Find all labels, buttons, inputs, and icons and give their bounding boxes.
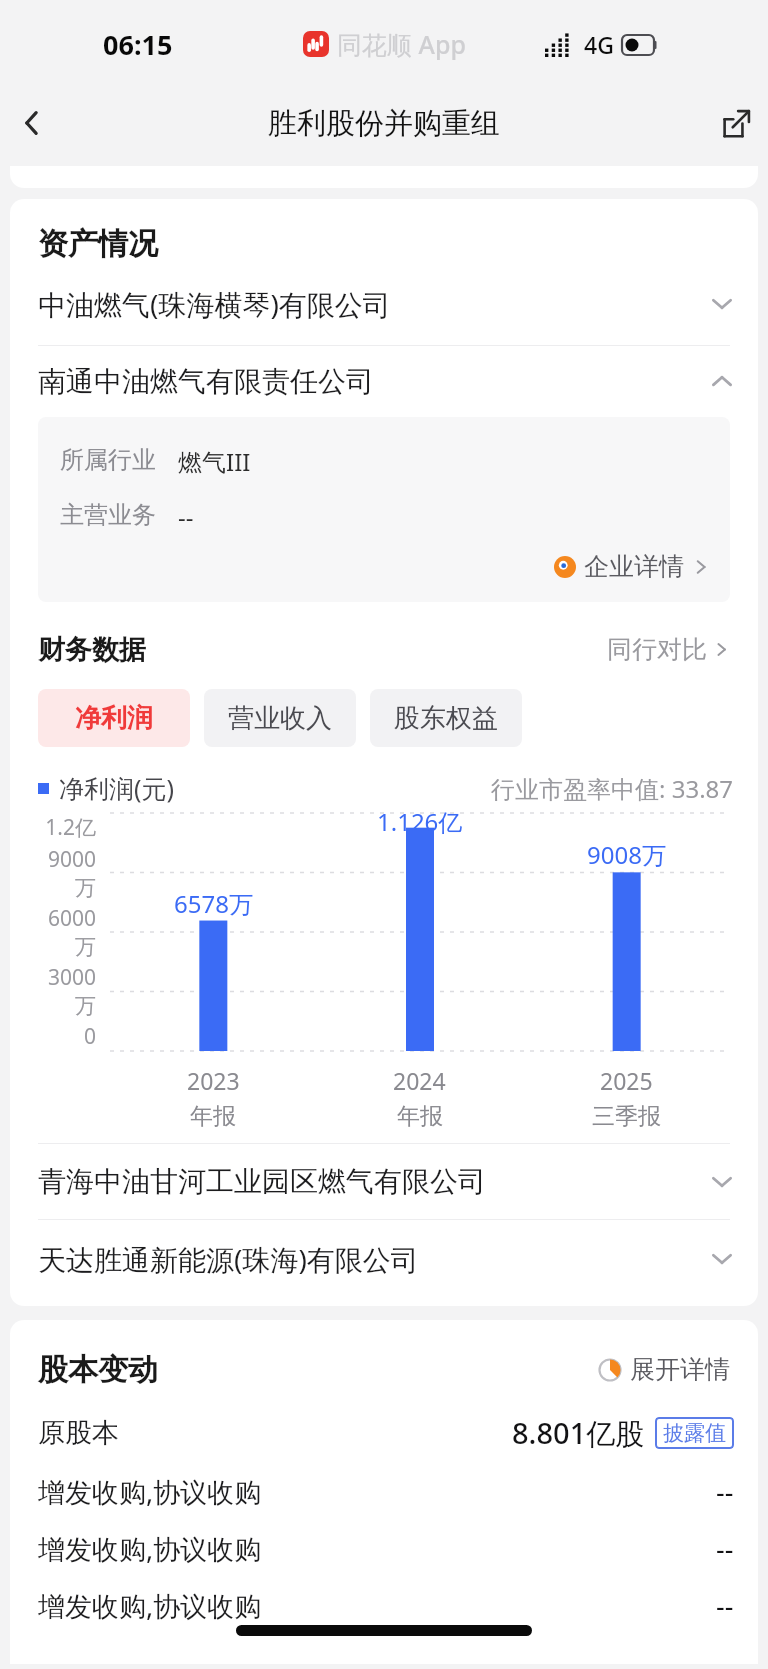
staticText: 中油燃气(珠海横琴)有限公司: [38, 285, 391, 323]
staticText: 年报: [190, 1102, 236, 1131]
staticText: --: [716, 1530, 734, 1567]
staticText: 企业详情: [584, 551, 684, 582]
button[interactable]: 增发收购,协议收购: [10, 1453, 758, 1510]
staticText: 胜利股份并购重组: [268, 105, 500, 142]
staticText: 1.126亿: [377, 805, 463, 838]
staticText: 1.2亿: [45, 813, 96, 842]
staticText: --: [716, 1473, 734, 1510]
staticText: 0: [83, 1022, 96, 1051]
staticText: 06:15: [103, 26, 173, 63]
button[interactable]: 原股本: [10, 1389, 758, 1453]
staticText: 净利润(元): [59, 771, 175, 805]
staticText: 股本变动: [38, 1351, 158, 1389]
staticText: 三季报: [592, 1102, 661, 1131]
button[interactable]: 净利润: [38, 689, 190, 747]
staticText: 披露值: [663, 1420, 726, 1446]
staticText: 股东权益: [394, 702, 498, 735]
staticText: 9008万: [587, 838, 666, 871]
button[interactable]: 青海中油甘河工业园区燃气有限公司: [10, 1144, 758, 1219]
staticText: 青海中油甘河工业园区燃气有限公司: [38, 1164, 486, 1199]
staticText: 3000万: [34, 963, 96, 1019]
staticText: 南通中油燃气有限责任公司: [38, 364, 374, 399]
button[interactable]: Back: [0, 91, 64, 155]
button[interactable]: 同行对比: [603, 630, 734, 669]
staticText: 营业收入: [228, 702, 332, 735]
staticText: 2024: [393, 1065, 446, 1096]
staticText: 主营业务: [60, 500, 156, 530]
staticText: --: [716, 1587, 734, 1624]
staticText: 2025: [600, 1065, 653, 1096]
button[interactable]: 中油燃气(珠海横琴)有限公司: [10, 263, 758, 345]
staticText: 净利润: [75, 702, 153, 735]
staticText: --: [178, 500, 194, 533]
staticText: 财务数据: [38, 633, 146, 667]
staticText: 所属行业: [60, 445, 156, 475]
staticText: 8.801亿股: [512, 1413, 645, 1453]
button[interactable]: 股东权益: [370, 689, 522, 747]
staticText: 6000万: [34, 904, 96, 960]
staticText: 9000万: [34, 845, 96, 901]
button[interactable]: 展开详情: [594, 1350, 734, 1389]
button[interactable]: 增发收购,协议收购: [10, 1510, 758, 1567]
staticText: 增发收购,协议收购: [38, 1473, 262, 1510]
button[interactable]: 增发收购,协议收购: [10, 1567, 758, 1624]
button[interactable]: 企业详情: [548, 547, 716, 586]
staticText: 原股本: [38, 1416, 119, 1450]
staticText: 年报: [397, 1102, 443, 1131]
staticText: 6578万: [174, 887, 253, 920]
staticText: 资产情况: [38, 225, 158, 263]
staticText: 同行对比: [607, 634, 707, 665]
button[interactable]: 南通中油燃气有限责任公司: [10, 346, 758, 417]
staticText: 增发收购,协议收购: [38, 1587, 262, 1624]
staticText: 展开详情: [630, 1354, 730, 1385]
button[interactable]: 营业收入: [204, 689, 356, 747]
staticText: 行业市盈率中值: 33.87: [491, 772, 734, 805]
staticText: 2023: [187, 1065, 240, 1096]
staticText: 增发收购,协议收购: [38, 1530, 262, 1567]
button[interactable]: Share: [704, 91, 768, 155]
staticText: 燃气III: [178, 445, 251, 478]
staticText: 同花顺 App: [337, 27, 466, 61]
staticText: 4G: [584, 29, 614, 60]
button[interactable]: 天达胜通新能源(珠海)有限公司: [10, 1220, 758, 1298]
staticText: 天达胜通新能源(珠海)有限公司: [38, 1240, 419, 1278]
